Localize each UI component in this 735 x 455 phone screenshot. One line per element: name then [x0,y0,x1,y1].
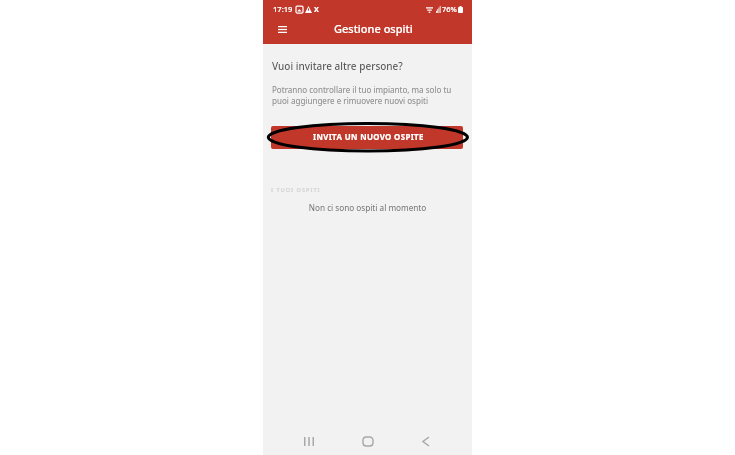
staticText: I TUOI OSPITI [271,186,321,194]
staticText: Potranno controllare il tuo impianto, ma… [272,84,452,106]
button[interactable]: Home [355,428,381,454]
button[interactable]: Back [413,428,439,454]
staticText: Vuoi invitare altre persone? [272,59,403,73]
staticText: 17:19 [273,4,293,14]
staticText: Gestione ospiti [334,21,413,36]
staticText: 76% [442,4,457,14]
button[interactable]: Recents [296,428,322,454]
staticText: INVITA UN NUOVO OSPITE [313,132,424,143]
staticText: Non ci sono ospiti al momento [263,202,472,213]
button[interactable]: INVITA UN NUOVO OSPITE [271,126,463,149]
button[interactable]: Menu [273,20,292,39]
staticText: X [314,4,319,14]
